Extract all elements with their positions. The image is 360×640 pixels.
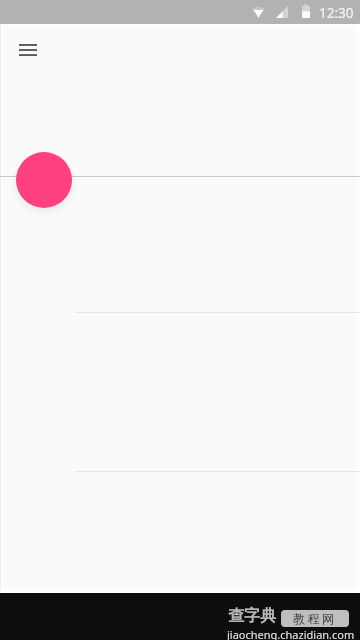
staticText: 12:30 <box>319 4 354 22</box>
button[interactable]: List item 2 <box>3 177 360 312</box>
staticText: 查字典 <box>228 606 276 626</box>
button[interactable]: Add <box>16 152 72 208</box>
staticText: 教程网 <box>293 611 337 626</box>
button[interactable]: List item 1 <box>3 26 360 176</box>
staticText: jiaocheng.chazidian.com <box>227 627 355 640</box>
button[interactable]: Open navigation drawer <box>4 26 52 74</box>
